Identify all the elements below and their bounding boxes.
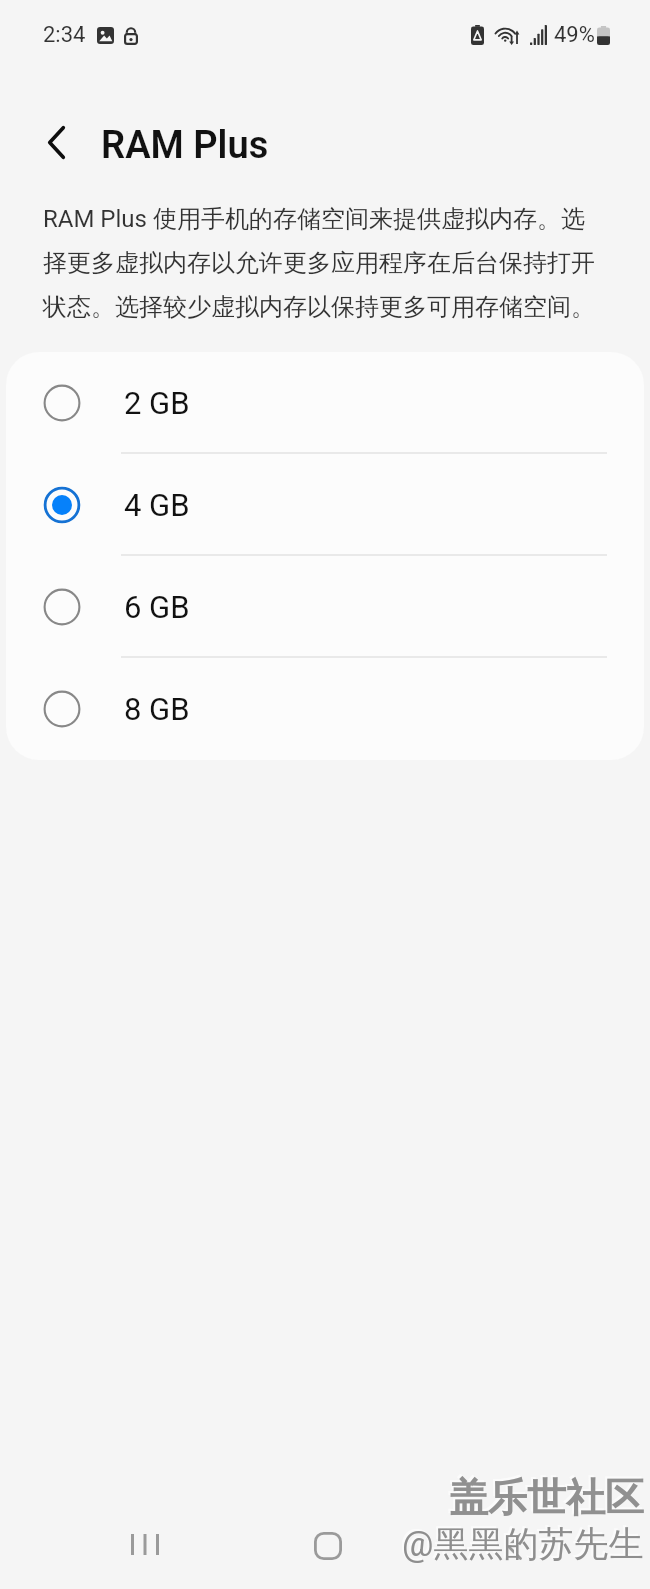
button[interactable]: Back [478,1510,550,1582]
staticText: 盖乐世社区 [449,1473,644,1522]
staticText: @黑黑的苏先生 [402,1522,644,1566]
button[interactable]: 4 GB [6,454,644,556]
button[interactable]: 6 GB [6,556,644,658]
staticText: 4 GB [124,487,190,523]
staticText: @黑黑的苏先生 [400,1520,642,1564]
staticText: 8 GB [124,691,190,727]
staticText: 6 GB [124,589,190,625]
staticText: 2 GB [124,385,190,421]
staticText: 2:34 [43,22,86,48]
button[interactable]: Back [28,114,84,170]
button[interactable]: Recent apps [109,1508,181,1580]
button[interactable]: 2 GB [6,352,644,454]
button[interactable]: Home [292,1510,364,1582]
staticText: RAM Plus [101,123,269,168]
staticText: 盖乐世社区 [447,1471,642,1520]
button[interactable]: 8 GB [6,658,644,760]
staticText: 49% [554,22,595,48]
staticText: RAM Plus 使用手机的存储空间来提供虚拟内存。选择更多虚拟内存以允许更多应… [43,192,608,326]
